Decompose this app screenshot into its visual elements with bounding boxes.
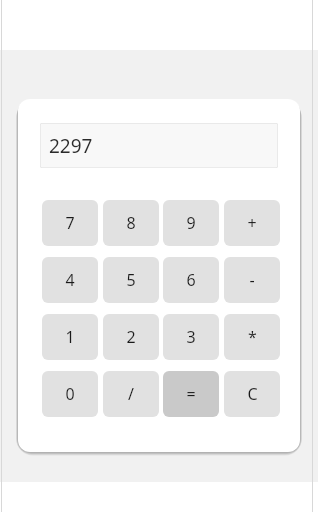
button[interactable]: 0 <box>42 371 98 417</box>
button[interactable]: 8 <box>103 200 159 246</box>
staticText: - <box>249 269 255 291</box>
staticText: 4 <box>65 269 75 291</box>
button[interactable]: 1 <box>42 314 98 360</box>
button[interactable]: 2297 <box>40 123 278 168</box>
button[interactable]: * <box>224 314 280 360</box>
button[interactable]: C <box>224 371 280 417</box>
button[interactable]: 4 <box>42 257 98 303</box>
button[interactable]: - <box>224 257 280 303</box>
button[interactable]: 3 <box>163 314 219 360</box>
staticText: C <box>247 383 258 405</box>
button[interactable]: 7 <box>42 200 98 246</box>
button[interactable]: / <box>103 371 159 417</box>
staticText: * <box>248 326 257 348</box>
staticText: 9 <box>186 212 196 234</box>
staticText: 0 <box>65 383 75 405</box>
staticText: 2 <box>126 326 136 348</box>
staticText: + <box>247 212 257 234</box>
staticText: 3 <box>186 326 196 348</box>
button[interactable]: = <box>163 371 219 417</box>
button[interactable]: 6 <box>163 257 219 303</box>
button[interactable]: 5 <box>103 257 159 303</box>
staticText: = <box>186 383 196 405</box>
staticText: 2297 <box>49 133 93 159</box>
button[interactable]: 9 <box>163 200 219 246</box>
staticText: 8 <box>126 212 136 234</box>
staticText: 1 <box>65 326 75 348</box>
button[interactable]: 2 <box>103 314 159 360</box>
staticText: 7 <box>65 212 75 234</box>
staticText: 5 <box>126 269 136 291</box>
staticText: 6 <box>186 269 196 291</box>
staticText: / <box>128 383 134 405</box>
button[interactable]: + <box>224 200 280 246</box>
